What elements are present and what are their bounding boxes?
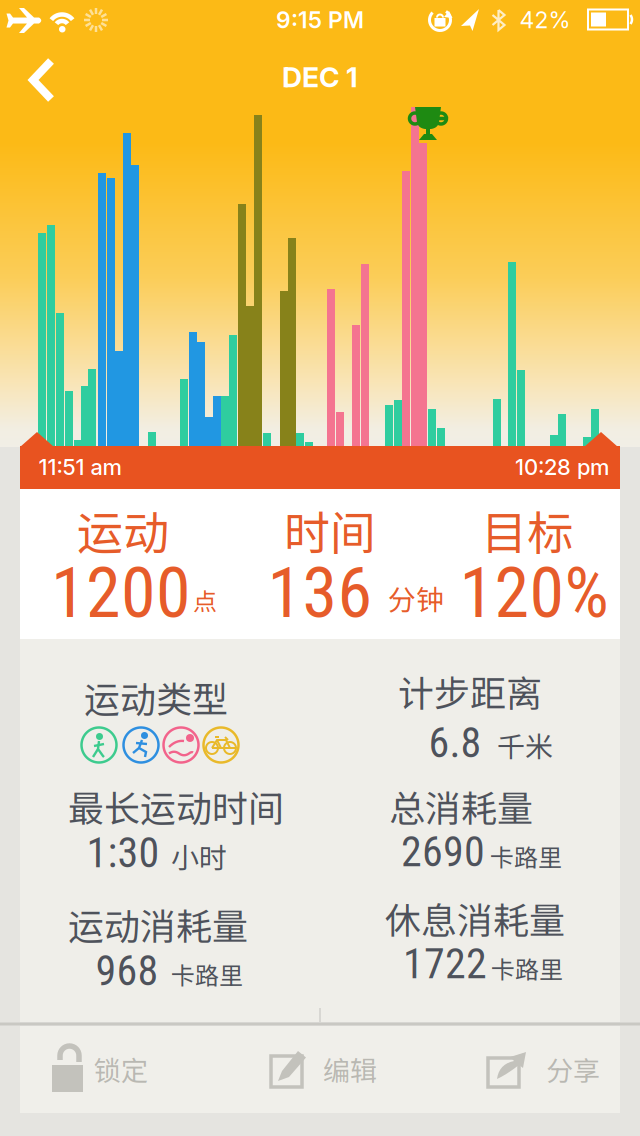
staticText: 最长运动时间 bbox=[68, 780, 284, 832]
staticText: 卡路里 bbox=[491, 951, 563, 985]
staticText: 编辑 bbox=[323, 1049, 377, 1089]
staticText: 点 bbox=[193, 583, 217, 617]
staticText: 卡路里 bbox=[171, 957, 243, 991]
staticText: 136 bbox=[267, 552, 372, 634]
button[interactable]: 编辑 bbox=[233, 1034, 403, 1104]
staticText: 11:51 am bbox=[38, 454, 121, 480]
staticText: 计步距离 bbox=[398, 665, 542, 717]
staticText: 锁定 bbox=[94, 1049, 148, 1089]
staticText: 1722 bbox=[403, 939, 487, 989]
staticText: 小时 bbox=[171, 836, 227, 876]
button[interactable]: 锁定 bbox=[25, 1034, 195, 1104]
button[interactable]: Back bbox=[12, 50, 72, 110]
staticText: 9:15 PM bbox=[276, 6, 364, 34]
staticText: 休息消耗量 bbox=[385, 892, 565, 944]
staticText: 目标 bbox=[481, 497, 573, 563]
staticText: 968 bbox=[95, 946, 158, 996]
staticText: 总消耗量 bbox=[389, 780, 533, 832]
staticText: 1200 bbox=[51, 552, 191, 634]
staticText: 分钟 bbox=[388, 578, 444, 618]
button[interactable]: 分享 bbox=[455, 1034, 625, 1104]
staticText: 运动类型 bbox=[84, 671, 228, 723]
staticText: 2690 bbox=[401, 827, 485, 877]
staticText: 分享 bbox=[546, 1049, 600, 1089]
staticText: 运动 bbox=[77, 497, 169, 563]
staticText: 1:30 bbox=[86, 828, 159, 878]
staticText: 120% bbox=[459, 552, 608, 634]
staticText: 千米 bbox=[497, 725, 553, 765]
staticText: 卡路里 bbox=[490, 839, 562, 873]
staticText: 42% bbox=[519, 6, 570, 34]
staticText: 10:28 pm bbox=[515, 454, 609, 480]
staticText: 运动消耗量 bbox=[68, 898, 248, 950]
staticText: 6.8 bbox=[428, 718, 481, 768]
staticText: DEC 1 bbox=[282, 60, 358, 94]
staticText: 时间 bbox=[284, 497, 376, 563]
